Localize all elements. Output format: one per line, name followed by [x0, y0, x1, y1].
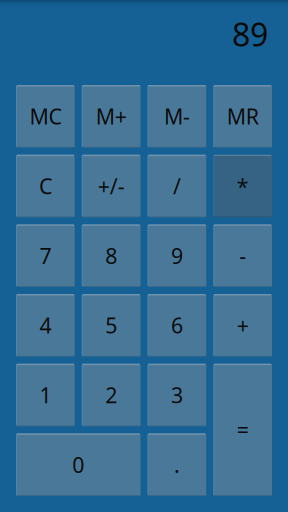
staticText: 4	[39, 311, 51, 339]
staticText: 5	[105, 311, 117, 339]
staticText: M-	[164, 102, 190, 130]
staticText: 6	[171, 311, 183, 339]
staticText: /	[173, 172, 181, 200]
staticText: =	[237, 416, 249, 444]
staticText: 8	[105, 241, 117, 270]
staticText: 7	[39, 241, 51, 270]
button[interactable]: 0	[16, 433, 140, 496]
staticText: M+	[96, 102, 127, 130]
button[interactable]: 9	[147, 224, 206, 287]
button[interactable]: 5	[82, 294, 141, 357]
button[interactable]: 1	[16, 364, 75, 426]
button[interactable]: M+	[82, 85, 141, 148]
button[interactable]: MC	[16, 85, 75, 148]
staticText: 89	[232, 13, 268, 55]
button[interactable]: 3	[147, 364, 206, 426]
button[interactable]: .	[147, 433, 206, 496]
staticText: +	[237, 311, 249, 339]
button[interactable]: 6	[147, 294, 206, 357]
button[interactable]: +	[213, 294, 272, 357]
staticText: +/-	[98, 172, 125, 200]
staticText: MC	[29, 102, 61, 130]
button[interactable]: =	[213, 364, 272, 496]
button[interactable]: *	[213, 155, 272, 217]
staticText: MR	[227, 102, 259, 130]
staticText: .	[174, 450, 180, 479]
staticText: -	[239, 241, 246, 270]
staticText: *	[237, 172, 249, 200]
button[interactable]: 4	[16, 294, 75, 357]
button[interactable]: +/-	[82, 155, 141, 217]
button[interactable]: /	[147, 155, 206, 217]
button[interactable]: M-	[147, 85, 206, 148]
staticText: 3	[171, 381, 183, 409]
button[interactable]: 7	[16, 224, 75, 287]
button[interactable]: MR	[213, 85, 272, 148]
staticText: 1	[39, 381, 51, 409]
staticText: 0	[72, 450, 84, 479]
button[interactable]: C	[16, 155, 75, 217]
staticText: 9	[171, 241, 183, 270]
button[interactable]: -	[213, 224, 272, 287]
staticText: C	[39, 172, 52, 200]
button[interactable]: 8	[82, 224, 141, 287]
button[interactable]: 2	[82, 364, 141, 426]
staticText: 2	[105, 381, 117, 409]
